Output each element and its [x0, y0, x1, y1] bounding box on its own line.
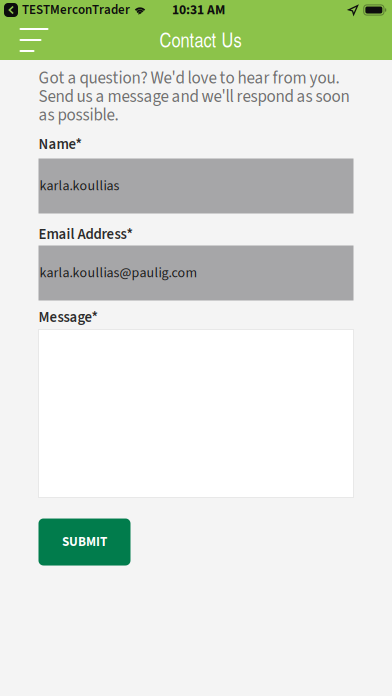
staticText: Name*: [38, 134, 81, 155]
button[interactable]: SUBMIT: [38, 518, 130, 565]
staticText: Send us a message and we'll respond as s…: [38, 85, 349, 109]
staticText: karla.koullias: [39, 176, 119, 196]
button[interactable]: Name: [38, 158, 353, 213]
button[interactable]: Back to TESTMerconTrader: [0, 0, 130, 20]
staticText: Message*: [38, 307, 97, 328]
staticText: 10:31 AM: [172, 0, 225, 20]
staticText: as possible.: [38, 103, 118, 127]
button[interactable]: Email Address: [38, 245, 353, 300]
staticText: SUBMIT: [62, 533, 107, 551]
staticText: Contact Us: [159, 26, 241, 53]
staticText: TESTMerconTrader: [22, 1, 130, 19]
button[interactable]: Menu: [0, 20, 66, 60]
staticText: Email Address*: [38, 224, 132, 245]
staticText: Got a question? We'd love to hear from y…: [38, 66, 339, 90]
staticText: karla.koullias@paulig.com: [39, 263, 197, 283]
